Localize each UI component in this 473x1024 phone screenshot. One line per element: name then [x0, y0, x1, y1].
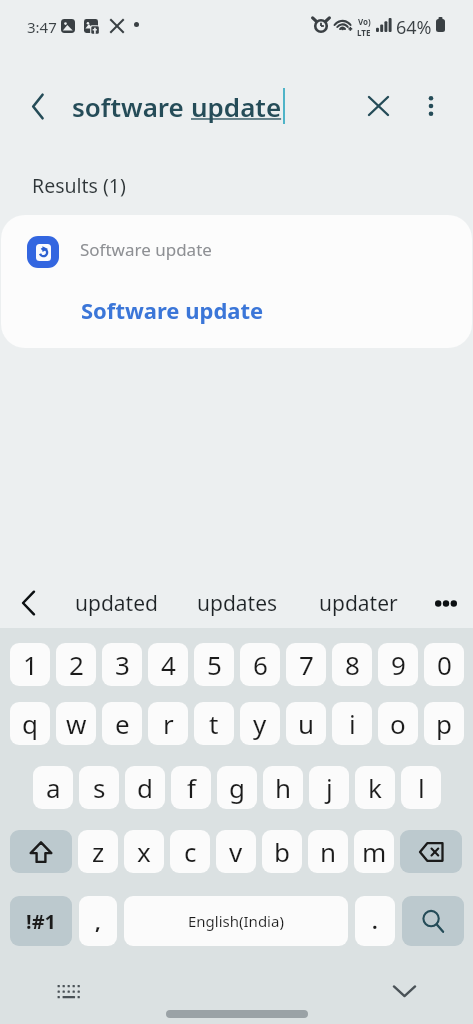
- button[interactable]: 1: [10, 643, 50, 686]
- button[interactable]: o: [378, 702, 418, 745]
- staticText: LTE: [357, 27, 371, 38]
- button[interactable]: .: [355, 896, 395, 946]
- staticText: 0: [437, 647, 452, 682]
- button[interactable]: Previous suggestions: [0, 574, 56, 632]
- button[interactable]: 4: [148, 643, 188, 686]
- staticText: 64%: [396, 15, 432, 40]
- staticText: 2: [69, 647, 84, 682]
- button[interactable]: !#1: [10, 896, 72, 946]
- staticText: e: [115, 706, 130, 741]
- button[interactable]: More suggestions: [419, 574, 473, 632]
- staticText: q: [22, 706, 38, 741]
- button[interactable]: 7: [286, 643, 326, 686]
- staticText: j: [326, 770, 333, 805]
- button[interactable]: Search: [402, 896, 464, 946]
- button[interactable]: w: [56, 702, 96, 745]
- button[interactable]: updates: [177, 574, 298, 632]
- staticText: 1: [23, 647, 38, 682]
- staticText: x: [137, 834, 151, 869]
- staticText: w: [66, 706, 87, 741]
- staticText: t: [209, 706, 219, 741]
- button[interactable]: i: [332, 702, 372, 745]
- button[interactable]: Clear search: [356, 84, 400, 128]
- button[interactable]: v: [216, 830, 256, 873]
- button[interactable]: English(India): [124, 896, 348, 946]
- staticText: English(India): [188, 911, 284, 931]
- button[interactable]: d: [125, 766, 165, 809]
- button[interactable]: n: [308, 830, 348, 873]
- staticText: i: [349, 706, 356, 741]
- staticText: o: [390, 706, 406, 741]
- staticText: !#1: [26, 908, 56, 935]
- button[interactable]: x: [124, 830, 164, 873]
- button[interactable]: q: [10, 702, 50, 745]
- button[interactable]: s: [79, 766, 119, 809]
- staticText: 4: [161, 647, 176, 682]
- staticText: .: [372, 908, 378, 935]
- button[interactable]: z: [78, 830, 118, 873]
- button[interactable]: Backspace: [400, 830, 462, 873]
- staticText: l: [418, 770, 425, 805]
- button[interactable]: 5: [194, 643, 234, 686]
- staticText: f: [187, 770, 196, 805]
- button[interactable]: Keyboard layout: [51, 973, 87, 1009]
- staticText: update: [191, 89, 282, 124]
- button[interactable]: a: [33, 766, 73, 809]
- staticText: u: [298, 706, 315, 741]
- button[interactable]: g: [217, 766, 257, 809]
- staticText: updates: [197, 589, 278, 618]
- button[interactable]: Hide keyboard: [386, 973, 422, 1009]
- button[interactable]: k: [355, 766, 395, 809]
- button[interactable]: 3: [102, 643, 142, 686]
- staticText: b: [274, 834, 290, 869]
- button[interactable]: More options: [409, 84, 453, 128]
- staticText: p: [436, 706, 452, 741]
- button[interactable]: l: [401, 766, 441, 809]
- button[interactable]: c: [170, 830, 210, 873]
- staticText: d: [137, 770, 153, 805]
- staticText: a: [46, 770, 61, 805]
- button[interactable]: 9: [378, 643, 418, 686]
- button[interactable]: j: [309, 766, 349, 809]
- button[interactable]: Back: [16, 84, 60, 128]
- button[interactable]: e: [102, 702, 142, 745]
- staticText: 5: [207, 647, 222, 682]
- button[interactable]: h: [263, 766, 303, 809]
- staticText: y: [253, 706, 267, 741]
- button[interactable]: 6: [240, 643, 280, 686]
- button[interactable]: Software update: [1, 215, 472, 348]
- staticText: updated: [75, 589, 158, 618]
- staticText: r: [163, 706, 174, 741]
- staticText: 7: [299, 647, 314, 682]
- staticText: Software update: [81, 295, 264, 325]
- button[interactable]: 2: [56, 643, 96, 686]
- staticText: ,: [95, 908, 101, 935]
- button[interactable]: Shift: [10, 830, 72, 873]
- staticText: 6: [253, 647, 268, 682]
- button[interactable]: u: [286, 702, 326, 745]
- staticText: 3:47: [27, 17, 57, 37]
- button[interactable]: m: [354, 830, 394, 873]
- staticText: z: [92, 834, 105, 869]
- button[interactable]: b: [262, 830, 302, 873]
- button[interactable]: r: [148, 702, 188, 745]
- button[interactable]: t: [194, 702, 234, 745]
- staticText: 9: [391, 647, 406, 682]
- staticText: k: [368, 770, 382, 805]
- button[interactable]: updated: [56, 574, 177, 632]
- button[interactable]: ,: [79, 896, 117, 946]
- button[interactable]: f: [171, 766, 211, 809]
- staticText: h: [275, 770, 292, 805]
- button[interactable]: updater: [298, 574, 419, 632]
- button[interactable]: y: [240, 702, 280, 745]
- button[interactable]: p: [424, 702, 464, 745]
- staticText: g: [229, 770, 245, 805]
- button[interactable]: 8: [332, 643, 372, 686]
- staticText: software: [72, 89, 191, 124]
- staticText: v: [229, 834, 243, 869]
- staticText: 3: [115, 647, 130, 682]
- staticText: Vo): [358, 16, 371, 27]
- staticText: 8: [345, 647, 360, 682]
- button[interactable]: 0: [424, 643, 464, 686]
- staticText: Software update: [80, 238, 212, 261]
